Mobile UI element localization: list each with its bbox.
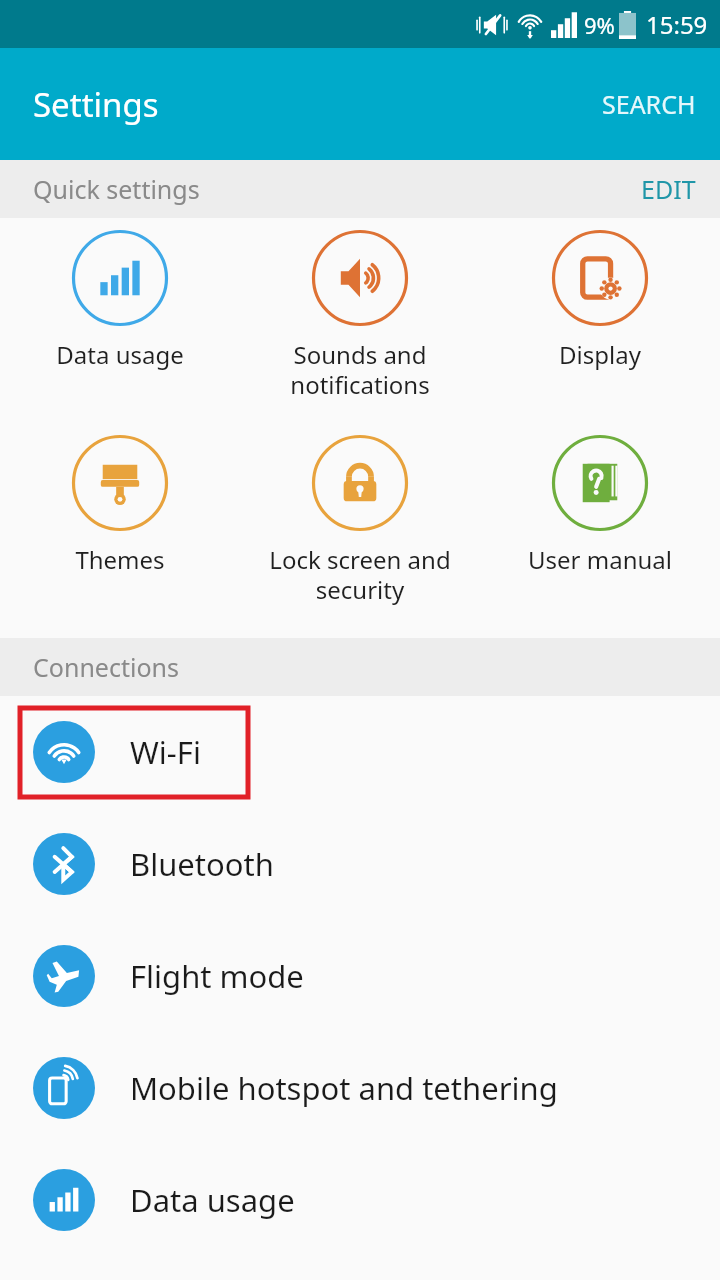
- staticText: SEARCH: [602, 87, 696, 121]
- button[interactable]: EDIT: [617, 162, 720, 216]
- staticText: Mobile hotspot and tethering: [130, 1067, 558, 1109]
- staticText: Data usage: [130, 1179, 295, 1221]
- staticText: User manual: [484, 543, 716, 576]
- button[interactable]: Mobile hotspot and tethering: [0, 1032, 720, 1144]
- button[interactable]: Lock screen and security: [240, 423, 480, 628]
- staticText: Flight mode: [130, 955, 304, 997]
- button[interactable]: Wi-Fi: [0, 696, 720, 808]
- button[interactable]: User manual: [480, 423, 720, 628]
- staticText: Display: [484, 338, 716, 371]
- staticText: 15:59: [646, 8, 708, 41]
- button[interactable]: Display: [480, 218, 720, 423]
- staticText: Wi-Fi: [130, 731, 201, 773]
- button[interactable]: Bluetooth: [0, 808, 720, 920]
- staticText: Sounds and notifications: [244, 338, 476, 401]
- button[interactable]: Themes: [0, 423, 240, 628]
- staticText: Connections: [33, 650, 179, 684]
- staticText: Settings: [33, 82, 159, 127]
- button[interactable]: SEARCH: [578, 71, 720, 137]
- staticText: Themes: [4, 543, 236, 576]
- button[interactable]: Data usage: [0, 1144, 720, 1256]
- button[interactable]: Flight mode: [0, 920, 720, 1032]
- staticText: 9%: [584, 10, 615, 40]
- button[interactable]: Data usage: [0, 218, 240, 423]
- staticText: Bluetooth: [130, 843, 274, 885]
- staticText: Quick settings: [33, 172, 200, 206]
- staticText: EDIT: [641, 172, 696, 206]
- staticText: Data usage: [4, 338, 236, 371]
- button[interactable]: Sounds and notifications: [240, 218, 480, 423]
- staticText: Lock screen and security: [244, 543, 476, 606]
